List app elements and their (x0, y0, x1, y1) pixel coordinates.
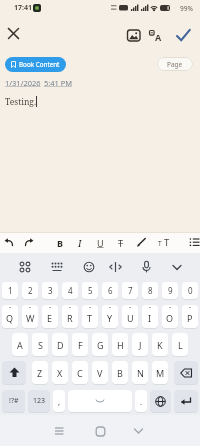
staticText: 123 (33, 396, 46, 406)
button[interactable] (4, 24, 23, 43)
button[interactable] (23, 237, 35, 248)
button[interactable] (50, 260, 64, 274)
staticText: !?# (9, 396, 19, 406)
button[interactable]: M (152, 361, 168, 384)
staticText: 17:41 (14, 3, 32, 13)
staticText: O (166, 312, 174, 324)
button[interactable] (2, 361, 26, 384)
button[interactable] (140, 260, 153, 274)
staticText: T (87, 312, 93, 324)
button[interactable]: 9 (162, 282, 178, 299)
button[interactable]: B (54, 235, 66, 250)
staticText: 3 (48, 285, 53, 296)
button[interactable] (108, 260, 123, 274)
button[interactable] (174, 390, 198, 412)
staticText: P (187, 312, 193, 324)
button[interactable]: I (142, 305, 158, 328)
staticText: C (77, 367, 83, 379)
button[interactable] (189, 237, 200, 248)
button[interactable]: P (182, 305, 198, 328)
button[interactable]: 1/31/2026 (5, 78, 41, 88)
button[interactable]: O (162, 305, 178, 328)
button[interactable]: Page (157, 57, 193, 71)
staticText: 5 (88, 285, 93, 296)
button[interactable]: D (52, 333, 68, 356)
staticText: A (17, 339, 23, 351)
staticText: 99% (180, 4, 193, 13)
button[interactable]: 7 (122, 282, 138, 299)
button[interactable]: S (32, 333, 48, 356)
button[interactable] (52, 424, 67, 438)
button[interactable]: L (172, 333, 188, 356)
button[interactable]: G (92, 333, 108, 356)
button[interactable]: V (92, 361, 108, 384)
staticText: 6 (108, 285, 113, 296)
button[interactable] (136, 237, 148, 248)
button[interactable] (131, 424, 146, 438)
staticText: U (127, 312, 134, 324)
button[interactable]: T (157, 235, 173, 250)
button[interactable]: Book Content (5, 57, 66, 72)
button[interactable]: A (12, 333, 28, 356)
button[interactable]: H (112, 333, 128, 356)
button[interactable]: 1 (2, 282, 18, 299)
button[interactable]: F (72, 333, 88, 356)
button[interactable]: 2 (22, 282, 38, 299)
button[interactable] (82, 260, 96, 274)
button[interactable]: K (152, 333, 168, 356)
button[interactable]: B (112, 361, 128, 384)
button[interactable]: I (74, 235, 86, 250)
staticText: W (26, 312, 35, 324)
button[interactable]: N (132, 361, 148, 384)
staticText: V (97, 367, 103, 379)
button[interactable]: C (72, 361, 88, 384)
button[interactable] (68, 390, 132, 412)
staticText: , (58, 396, 61, 407)
button[interactable]: 3 (42, 282, 58, 299)
button[interactable] (175, 28, 192, 43)
button[interactable]: 6 (102, 282, 118, 299)
button[interactable] (3, 237, 15, 248)
button[interactable]: 0 (182, 282, 198, 299)
staticText: K (157, 339, 163, 351)
staticText: X (57, 367, 63, 379)
staticText: T (118, 237, 124, 249)
button[interactable]: E (42, 305, 58, 328)
button[interactable]: T (82, 305, 98, 328)
button[interactable]: A (149, 29, 165, 42)
button[interactable] (170, 261, 184, 273)
button[interactable]: U (122, 305, 138, 328)
button[interactable] (18, 260, 32, 274)
staticText: D (57, 339, 64, 351)
button[interactable]: Y (102, 305, 118, 328)
button[interactable]: Q (2, 305, 18, 328)
staticText: 0 (188, 285, 193, 296)
button[interactable]: J (132, 333, 148, 356)
button[interactable]: X (52, 361, 68, 384)
button[interactable] (93, 424, 108, 438)
button[interactable]: 5:41 PM (44, 78, 73, 88)
button[interactable] (127, 29, 141, 42)
staticText: M (156, 367, 165, 379)
button[interactable]: 5 (82, 282, 98, 299)
staticText: B (57, 237, 63, 249)
staticText: T (158, 239, 162, 248)
button[interactable] (150, 390, 171, 412)
staticText: . (140, 396, 143, 407)
button[interactable]: Z (32, 361, 48, 384)
button[interactable]: . (135, 390, 147, 412)
button[interactable]: !?# (2, 390, 25, 412)
button[interactable]: U (93, 235, 107, 250)
staticText: Page (167, 60, 183, 69)
button[interactable]: W (22, 305, 38, 328)
button[interactable]: 8 (142, 282, 158, 299)
staticText: I (78, 237, 82, 249)
button[interactable]: 123 (28, 390, 50, 412)
button[interactable] (174, 361, 198, 384)
button[interactable]: 4 (62, 282, 78, 299)
button[interactable]: T (114, 235, 128, 250)
button[interactable]: R (62, 305, 78, 328)
button[interactable]: , (53, 390, 65, 412)
staticText: F (78, 339, 83, 351)
staticText: 4 (68, 285, 73, 296)
